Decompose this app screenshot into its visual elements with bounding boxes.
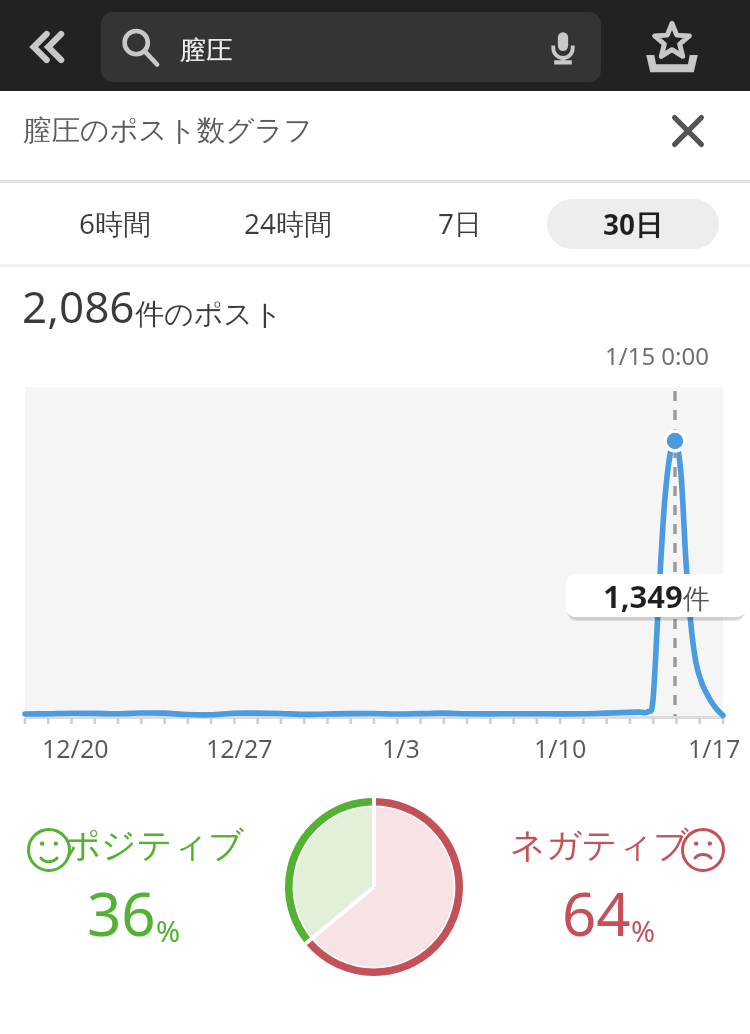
staticText: 36 (87, 872, 156, 954)
staticText: 12/27 (206, 731, 273, 765)
staticText: % (156, 911, 181, 950)
staticText: 7日 (438, 204, 483, 242)
button[interactable]: 24時間 (230, 197, 410, 249)
staticText: 膣圧 (180, 34, 232, 67)
staticText: 1,349 (603, 575, 683, 617)
button[interactable]: ポジティブ (14, 823, 238, 867)
staticText: % (631, 911, 656, 950)
staticText: 2,086 (22, 276, 135, 336)
staticText: 件のポスト (135, 296, 283, 333)
button[interactable]: Back (15, 16, 77, 78)
button[interactable]: 7日 (424, 197, 574, 249)
staticText: 12/20 (42, 731, 109, 765)
staticText: 件 (683, 582, 710, 616)
button[interactable]: Voice search (539, 23, 587, 71)
staticText: 64 (562, 872, 631, 954)
button[interactable]: Close (656, 99, 720, 163)
staticText: 1/17 (688, 731, 741, 765)
staticText: 30日 (603, 205, 664, 243)
button[interactable]: 30日 (547, 199, 719, 249)
staticText: 6時間 (79, 204, 152, 242)
button[interactable]: ネガティブ (510, 823, 734, 867)
staticText: ポジティブ (65, 823, 245, 867)
staticText: ネガティブ (510, 823, 690, 867)
staticText: 1/10 (534, 731, 587, 765)
button[interactable]: Saved items (640, 18, 704, 82)
staticText: 24時間 (244, 204, 333, 242)
staticText: 1/3 (382, 731, 420, 765)
staticText: 膣圧のポスト数グラフ (23, 113, 313, 149)
button[interactable]: 6時間 (65, 197, 245, 249)
button[interactable]: 膣圧 (101, 12, 601, 82)
staticText: 1/15 0:00 (605, 339, 709, 372)
